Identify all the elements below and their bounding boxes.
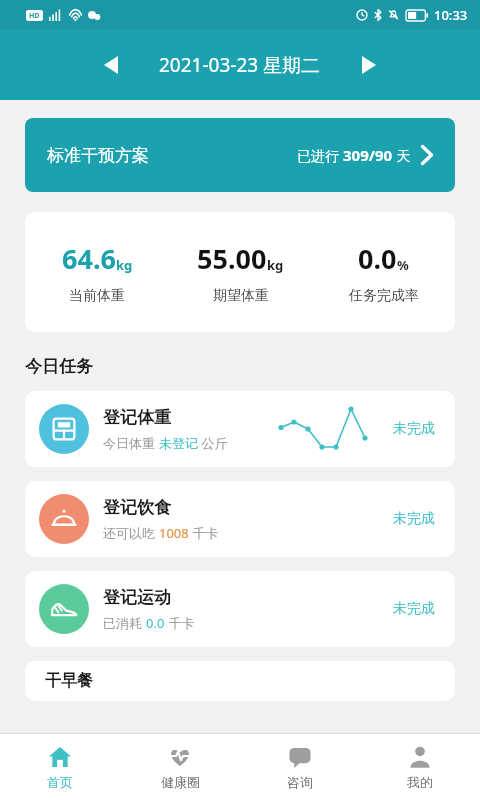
staticText: 未完成 xyxy=(393,510,441,528)
staticText: 1008 xyxy=(159,524,189,542)
staticText: kg xyxy=(267,256,284,274)
staticText: 千卡 xyxy=(165,614,195,632)
staticText: 我的 xyxy=(407,774,433,790)
button[interactable]: 登记饮食 xyxy=(25,481,455,557)
staticText: 期望体重 xyxy=(213,287,269,305)
button[interactable]: 首页 xyxy=(0,734,120,800)
button[interactable]: 2021-03-23 星期二 xyxy=(159,52,321,78)
button[interactable]: Next day xyxy=(347,43,391,87)
staticText: 登记运动 xyxy=(103,587,171,608)
staticText: 千卡 xyxy=(189,524,219,542)
button[interactable]: 干早餐 xyxy=(25,661,455,701)
staticText: 今日任务 xyxy=(25,356,93,377)
staticText: 未完成 xyxy=(393,600,441,618)
button[interactable]: 登记体重 xyxy=(25,391,455,467)
staticText: 未登记 xyxy=(159,435,198,451)
button[interactable]: 0.0 xyxy=(312,240,455,305)
staticText: kg xyxy=(116,256,133,274)
button[interactable]: 登记运动 xyxy=(25,571,455,647)
button[interactable]: 我的 xyxy=(360,734,480,800)
button[interactable]: 咨询 xyxy=(240,734,360,800)
button[interactable]: Previous day xyxy=(89,43,133,87)
staticText: % xyxy=(397,256,409,274)
staticText: HD xyxy=(29,11,40,21)
staticText: 首页 xyxy=(47,774,73,790)
staticText: 未完成 xyxy=(393,420,441,438)
staticText: 今日体重 xyxy=(103,434,159,452)
staticText: 309/90 xyxy=(343,145,393,165)
staticText: 任务完成率 xyxy=(349,287,419,305)
staticText: 10:33 xyxy=(434,6,468,24)
button[interactable]: 55.00 xyxy=(169,240,312,305)
staticText: 公斤 xyxy=(198,434,228,452)
staticText: 天 xyxy=(393,146,411,165)
button[interactable]: 健康圈 xyxy=(120,734,240,800)
staticText: 干早餐 xyxy=(45,671,93,691)
staticText: 登记体重 xyxy=(103,407,171,428)
staticText: 当前体重 xyxy=(69,287,125,305)
staticText: 已消耗 xyxy=(103,614,146,632)
staticText: 0.0 xyxy=(358,240,397,277)
staticText: 标准干预方案 xyxy=(47,145,149,166)
staticText: 咨询 xyxy=(287,774,313,790)
staticText: 还可以吃 xyxy=(103,524,159,542)
button[interactable]: 标准干预方案 xyxy=(25,118,455,192)
staticText: 64.6 xyxy=(62,240,116,277)
staticText: 登记饮食 xyxy=(103,497,171,518)
staticText: 健康圈 xyxy=(161,774,200,790)
staticText: 已进行 xyxy=(297,146,343,165)
button[interactable]: 64.6 xyxy=(25,240,169,305)
staticText: 55.00 xyxy=(197,240,267,277)
staticText: 0.0 xyxy=(146,614,165,632)
